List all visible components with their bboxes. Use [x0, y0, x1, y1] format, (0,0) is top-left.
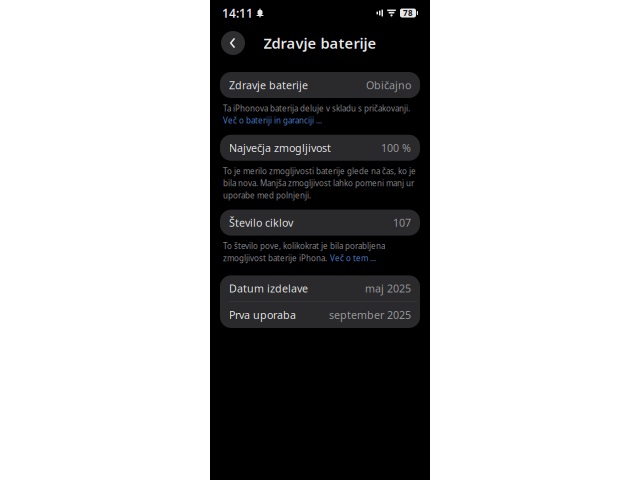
- staticText: maj 2025: [365, 281, 411, 295]
- staticText: uporabe med polnjenji.: [223, 190, 311, 201]
- button[interactable]: Prva uporaba: [220, 302, 420, 328]
- button[interactable]: Več o bateriji in garanciji ...: [223, 115, 322, 126]
- staticText: Zdravje baterije: [229, 78, 308, 92]
- button[interactable]: Več o tem ...: [330, 253, 376, 263]
- staticText: To je merilo zmogljivosti baterije glede…: [223, 166, 416, 176]
- staticText: Ta iPhonova baterija deluje v skladu s p…: [223, 103, 410, 114]
- staticText: Datum izdelave: [229, 281, 308, 295]
- staticText: 78: [403, 8, 413, 18]
- staticText: Več o bateriji in garanciji ...: [223, 115, 322, 126]
- staticText: Število ciklov: [229, 215, 293, 230]
- staticText: 107: [393, 215, 411, 230]
- button[interactable]: Največja zmogljivost: [210, 135, 430, 161]
- staticText: 100 %: [381, 141, 411, 155]
- staticText: bila nova. Manjša zmogljivost lahko pome…: [223, 178, 414, 188]
- button[interactable]: Število ciklov: [210, 210, 430, 236]
- staticText: 14:11: [222, 5, 253, 21]
- staticText: Več o tem ...: [330, 253, 376, 263]
- staticText: zmogljivost baterije iPhona.: [223, 253, 327, 263]
- button[interactable]: Datum izdelave: [220, 275, 420, 301]
- staticText: Zdravje baterije: [263, 33, 376, 53]
- staticText: september 2025: [329, 308, 411, 322]
- button[interactable]: Nazaj: [219, 29, 247, 57]
- button[interactable]: Zdravje baterije: [210, 72, 430, 98]
- staticText: Največja zmogljivost: [229, 141, 331, 155]
- staticText: Običajno: [366, 78, 411, 92]
- staticText: Prva uporaba: [229, 308, 296, 322]
- staticText: To število pove, kolikokrat je bila pora…: [223, 241, 385, 251]
